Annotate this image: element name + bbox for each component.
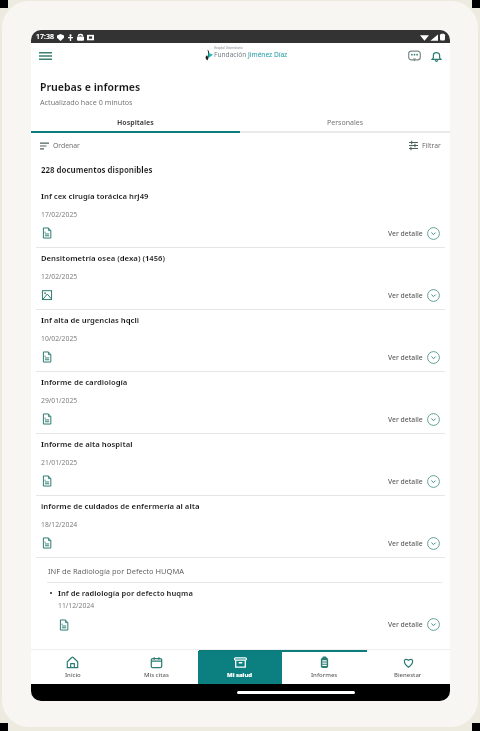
staticText: Ver detalle [388,477,423,486]
button[interactable]: Notifications [427,47,445,65]
staticText: 21/01/2025 [41,458,78,467]
staticText: 228 documentos disponibles [41,165,153,176]
button[interactable]: Ver detalle [386,411,442,428]
button[interactable]: Inf cex cirugía torácica hrj49 [31,186,450,247]
button[interactable]: Mis citas [114,651,198,684]
button[interactable]: Ordenar [36,138,84,153]
button[interactable]: Filtrar [405,138,445,153]
button[interactable]: Ver detalle [386,349,442,366]
button[interactable]: Inf alta de urgencias hqcli [31,309,450,371]
staticText: Ver detalle [388,539,423,548]
button[interactable]: Informes [282,651,366,684]
button[interactable]: Chat [405,47,423,65]
button[interactable]: Hospitales [31,114,240,131]
staticText: Ordenar [53,141,80,150]
staticText: Densitometría osea (dexa) (1456) [41,253,165,263]
staticText: Hospitales [117,118,154,128]
staticText: Inicio [65,671,81,679]
staticText: Pruebas e informes [40,80,141,94]
button[interactable]: INF de Radiología por Defecto HUQMA [31,558,450,639]
button[interactable]: Ver detalle [386,225,442,242]
staticText: informe de cuidados de enfermería al alt… [41,501,200,511]
staticText: Ver detalle [388,353,423,362]
button[interactable]: Ver detalle [386,616,442,633]
button[interactable]: Ver detalle [386,535,442,552]
button[interactable]: informe de cuidados de enfermería al alt… [31,495,450,557]
staticText: 17/02/2025 [41,210,78,219]
staticText: 17:38 [36,32,54,42]
staticText: 10/02/2025 [41,334,78,343]
button[interactable]: Ver detalle [386,473,442,490]
staticText: Bienestar [394,671,422,679]
staticText: Mis citas [144,671,169,679]
staticText: Ver detalle [388,291,423,300]
staticText: Inf cex cirugía torácica hrj49 [41,191,149,201]
button[interactable]: Mi salud [198,651,282,684]
staticText: Ver detalle [388,415,423,424]
staticText: 11/12/2024 [58,601,95,610]
staticText: 18/12/2024 [41,520,78,529]
staticText: Informes [311,671,338,679]
staticText: 12/02/2025 [41,272,78,281]
staticText: Ver detalle [388,620,423,629]
staticText: Ver detalle [388,229,423,238]
staticText: Inf alta de urgencias hqcli [41,315,139,325]
staticText: Mi salud [227,671,253,679]
staticText: Hospital Universitario [214,46,243,50]
staticText: Inf de radiología por defecto huqma [58,588,193,598]
staticText: 29/01/2025 [41,396,78,405]
button[interactable]: Informe de cardiología [31,371,450,433]
button[interactable]: Personales [240,114,450,131]
staticText: Fundación Jiménez Díaz [214,50,288,59]
button[interactable]: Inicio [31,651,114,684]
staticText: Informe de cardiología [41,377,128,387]
staticText: Filtrar [422,141,441,150]
staticText: Actualizado hace 0 minutos [40,97,133,107]
staticText: Informe de alta hospital [41,439,133,449]
button[interactable]: Open navigation menu [33,43,57,69]
staticText: INF de Radiología por Defecto HUQMA [48,566,185,576]
button[interactable]: Ver detalle [386,287,442,304]
button[interactable]: Informe de alta hospital [31,433,450,495]
button[interactable]: Bienestar [366,651,450,684]
button[interactable]: Densitometría osea (dexa) (1456) [31,247,450,309]
staticText: Personales [327,118,364,128]
